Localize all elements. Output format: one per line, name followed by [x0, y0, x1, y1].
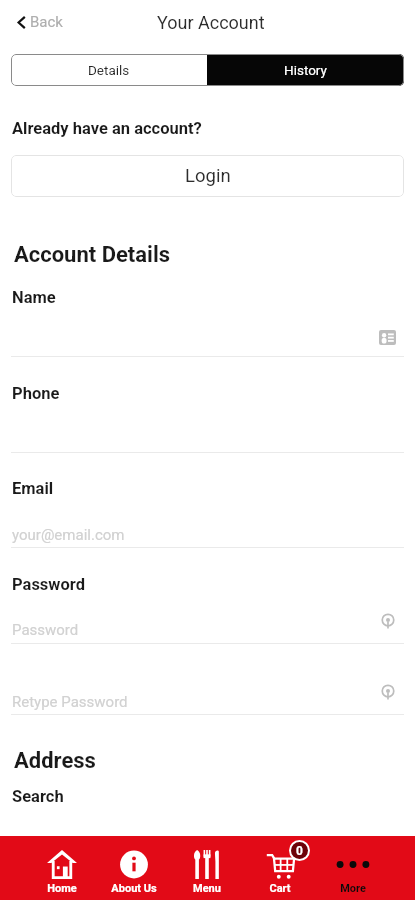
- staticText: Details: [88, 62, 130, 78]
- staticText: your@email.com: [12, 526, 125, 544]
- staticText: Password: [12, 621, 79, 639]
- button[interactable]: Details: [11, 54, 207, 86]
- staticText: Menu: [193, 882, 221, 895]
- button[interactable]: Back: [0, 9, 77, 35]
- staticText: Your Account: [157, 12, 265, 33]
- staticText: About Us: [111, 882, 157, 895]
- staticText: Login: [185, 165, 231, 187]
- staticText: Password: [12, 575, 85, 594]
- staticText: Search: [12, 787, 64, 806]
- button[interactable]: Home: [26, 836, 98, 900]
- button[interactable]: History: [207, 54, 404, 86]
- button[interactable]: Cart: [243, 836, 316, 900]
- staticText: More: [340, 882, 366, 895]
- staticText: Cart: [269, 882, 291, 895]
- button[interactable]: About Us: [98, 836, 170, 900]
- staticText: Phone: [12, 384, 60, 403]
- staticText: Back: [30, 13, 63, 31]
- staticText: History: [284, 62, 327, 78]
- staticText: Retype Password: [12, 693, 128, 711]
- staticText: 0: [296, 844, 303, 858]
- button[interactable]: Menu: [170, 836, 243, 900]
- staticText: Home: [47, 882, 77, 895]
- staticText: Name: [12, 288, 56, 307]
- button[interactable]: Login: [11, 155, 404, 197]
- staticText: Address: [14, 748, 96, 774]
- staticText: Email: [12, 479, 54, 498]
- staticText: Account Details: [14, 242, 171, 268]
- staticText: Already have an account?: [12, 119, 202, 138]
- button[interactable]: More: [316, 836, 389, 900]
